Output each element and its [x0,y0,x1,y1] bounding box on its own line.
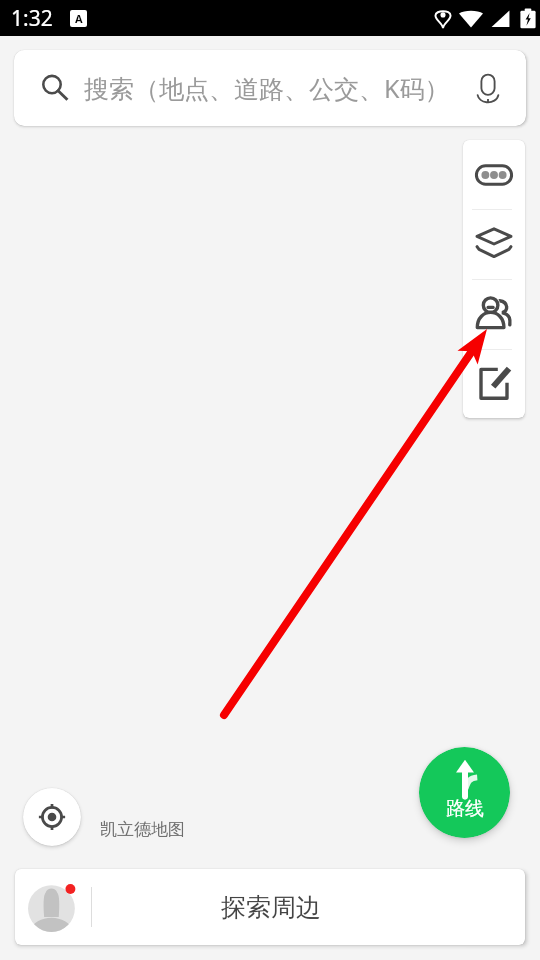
button[interactable]: 探索周边 [15,869,525,945]
staticText: 路线 [446,797,484,821]
button[interactable]: 路线 [419,747,510,838]
button[interactable]: Layers [463,210,525,279]
staticText: 1:32 [11,4,53,33]
button[interactable]: Traffic [463,140,525,209]
staticText: 探索周边 [221,892,321,923]
staticText: A [75,11,83,26]
button[interactable]: 搜索（地点、道路、公交、K码） [14,50,526,126]
button[interactable]: Voice search [470,70,506,106]
staticText: 搜索（地点、道路、公交、K码） [84,71,450,105]
button[interactable]: Report [463,350,525,418]
button[interactable]: My location [23,788,81,846]
staticText: 凯立德地图 [100,819,185,840]
button[interactable]: Friends [463,280,525,349]
